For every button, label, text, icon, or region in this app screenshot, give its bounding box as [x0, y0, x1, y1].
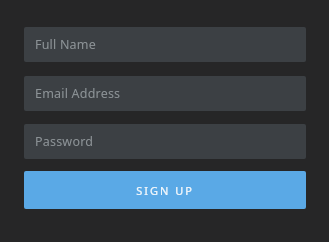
button[interactable]: Full Name — [24, 27, 306, 62]
staticText: Password — [35, 133, 94, 150]
staticText: SIGN UP — [136, 183, 194, 198]
staticText: Email Address — [35, 85, 121, 102]
button[interactable]: Email Address — [24, 76, 306, 111]
staticText: Full Name — [35, 36, 96, 53]
button[interactable]: Sign up — [24, 171, 306, 209]
button[interactable]: Password — [24, 124, 306, 159]
